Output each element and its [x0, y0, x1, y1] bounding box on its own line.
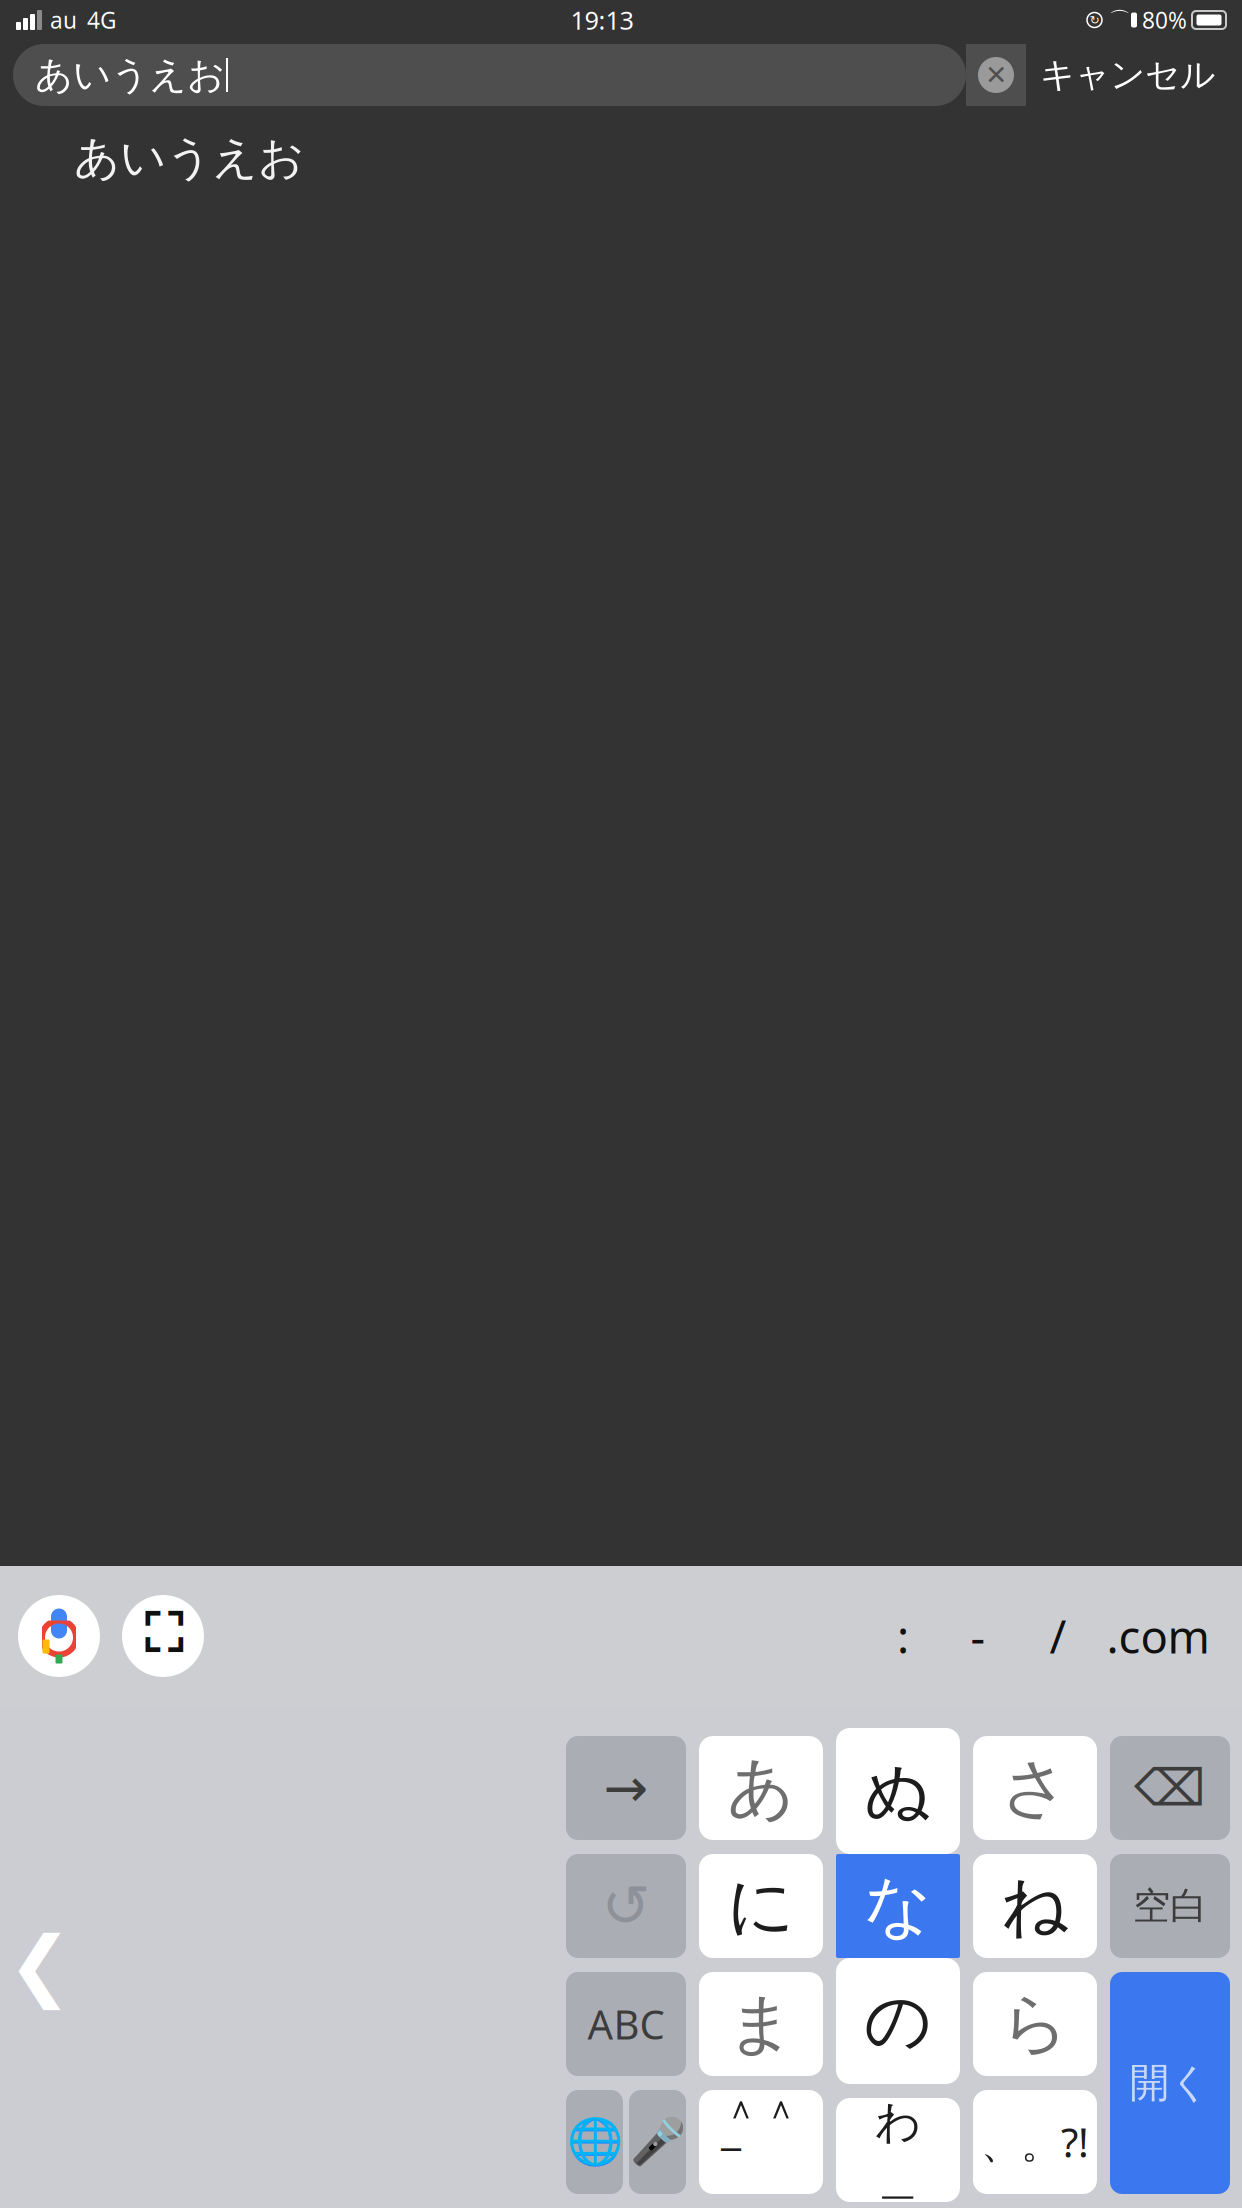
staticText: .com: [1106, 1606, 1209, 1666]
staticText: 🌐: [566, 2116, 622, 2168]
staticText: :: [897, 1606, 909, 1666]
button[interactable]: の: [836, 1958, 960, 2084]
button[interactable]: 戻る: [0, 1905, 80, 2025]
staticText: →: [603, 1758, 648, 1818]
staticText: ❮: [7, 1921, 72, 2009]
button[interactable]: →: [566, 1736, 686, 1840]
staticText: 、。?!: [981, 2115, 1089, 2169]
button[interactable]: あいうえお: [0, 106, 1242, 210]
button[interactable]: ⌫: [1110, 1736, 1230, 1840]
staticText: ABC: [587, 1997, 664, 2050]
staticText: キャンセル: [1040, 54, 1215, 96]
button[interactable]: -: [938, 1596, 1018, 1676]
staticText: ら: [1001, 1983, 1069, 2065]
staticText: ↺: [601, 1873, 650, 1939]
button[interactable]: .com: [1098, 1596, 1218, 1676]
staticText: 4G: [87, 5, 117, 35]
staticText: /: [1049, 1606, 1066, 1666]
button[interactable]: キャンセル: [1026, 44, 1229, 106]
staticText: ⛶: [144, 1610, 181, 1662]
staticText: au: [50, 5, 77, 35]
button[interactable]: 空白: [1110, 1854, 1230, 1958]
staticText: さ: [1001, 1747, 1069, 1829]
staticText: わ ＿: [875, 2094, 921, 2206]
staticText: ⌒: [1109, 7, 1130, 33]
staticText: あ: [727, 1747, 795, 1829]
staticText: ぬ: [864, 1750, 932, 1832]
staticText: ね: [1001, 1865, 1069, 1947]
button[interactable]: 、。?!: [973, 2090, 1097, 2194]
button[interactable]: に: [699, 1854, 823, 1958]
staticText: の: [864, 1980, 932, 2062]
button[interactable]: あいうえお: [13, 44, 966, 106]
button[interactable]: な: [836, 1854, 960, 1958]
staticText: あいうえお: [35, 52, 225, 98]
staticText: ⌫: [1134, 1759, 1206, 1817]
button[interactable]: ら: [973, 1972, 1097, 2076]
button[interactable]: 🎤: [629, 2090, 686, 2194]
staticText: 開く: [1129, 2058, 1210, 2107]
button[interactable]: 音声入力: [18, 1595, 100, 1677]
button[interactable]: ぬ: [836, 1728, 960, 1854]
staticText: 空白: [1133, 1883, 1207, 1929]
staticText: ＾＾ ‾: [721, 2091, 801, 2193]
button[interactable]: さ: [973, 1736, 1097, 1840]
button[interactable]: わ ＿: [836, 2098, 960, 2202]
button[interactable]: あ: [699, 1736, 823, 1840]
button[interactable]: 🌐: [566, 2090, 623, 2194]
button[interactable]: ＾＾ ‾: [699, 2090, 823, 2194]
button[interactable]: /: [1018, 1596, 1098, 1676]
staticText: ま: [727, 1983, 795, 2065]
button[interactable]: 開く: [1110, 1972, 1230, 2194]
button[interactable]: 消去: [966, 44, 1026, 106]
staticText: 80%: [1142, 5, 1187, 35]
staticText: 19:13: [570, 3, 633, 37]
button[interactable]: ABC: [566, 1972, 686, 2076]
button[interactable]: ↺: [566, 1854, 686, 1958]
button[interactable]: :: [868, 1596, 938, 1676]
staticText: ✕: [985, 60, 1007, 90]
button[interactable]: レンズ: [122, 1595, 204, 1677]
staticText: あいうえお: [74, 130, 304, 186]
staticText: 🎤: [629, 2116, 685, 2168]
staticText: な: [864, 1865, 932, 1947]
staticText: に: [727, 1865, 795, 1947]
staticText: -: [970, 1606, 985, 1666]
button[interactable]: ま: [699, 1972, 823, 2076]
staticText: ↻: [1089, 13, 1099, 27]
button[interactable]: ね: [973, 1854, 1097, 1958]
